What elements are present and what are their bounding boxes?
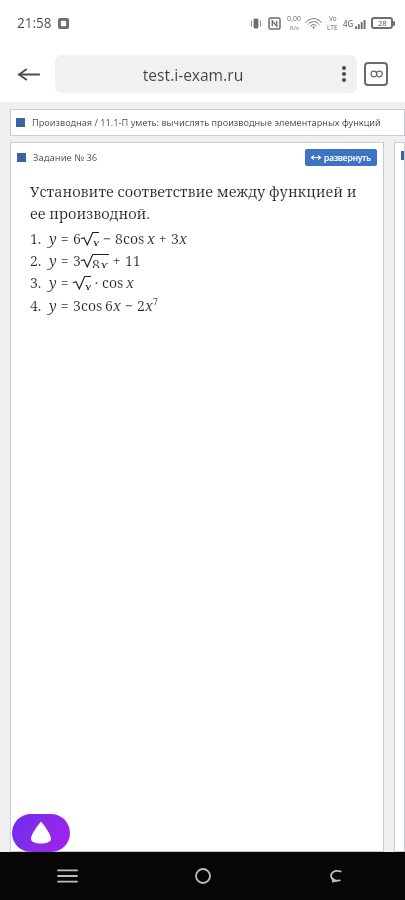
button[interactable]: Recent apps	[0, 852, 135, 900]
staticText: 1.	[30, 229, 42, 248]
staticText: 2	[137, 296, 145, 315]
button[interactable]: Tabs	[356, 54, 396, 94]
button[interactable]: Home	[135, 852, 270, 900]
staticText: 21:58	[17, 14, 52, 32]
staticText: =	[57, 296, 73, 315]
staticText: cos	[102, 273, 124, 292]
staticText: y	[49, 228, 57, 248]
staticText: развернуть	[324, 152, 371, 164]
staticText: =	[57, 251, 73, 270]
staticText: 2.	[30, 251, 42, 270]
staticText: =	[57, 229, 73, 248]
staticText: −	[121, 296, 137, 315]
staticText: x	[100, 255, 108, 268]
staticText: y	[49, 295, 57, 315]
staticText: 28	[378, 18, 387, 28]
staticText: 3	[171, 229, 179, 248]
staticText: 11	[125, 251, 141, 270]
staticText: 4G	[343, 18, 354, 29]
staticText: cos	[123, 229, 145, 248]
button[interactable]: test.i-exam.ru	[55, 55, 357, 93]
staticText: y	[49, 272, 57, 292]
button[interactable]	[394, 142, 405, 852]
staticText: 6	[105, 296, 113, 315]
staticText: x	[92, 233, 99, 246]
staticText: 8	[92, 255, 100, 268]
staticText: x	[126, 272, 134, 292]
staticText: 3.	[30, 273, 42, 292]
staticText: x	[147, 228, 155, 248]
staticText: x	[113, 295, 121, 315]
staticText: cos	[81, 296, 103, 315]
staticText: 3	[73, 251, 81, 270]
staticText: 8	[115, 229, 123, 248]
staticText: x	[145, 295, 153, 315]
staticText: x	[179, 228, 187, 248]
button[interactable]: Производная / 11.1-П уметь: вычислять пр…	[10, 109, 405, 136]
staticText: −	[99, 229, 115, 248]
button[interactable]: Alice assistant	[12, 814, 70, 852]
button[interactable]: развернуть	[305, 149, 377, 166]
staticText: 0,00	[287, 14, 301, 24]
staticText: Установите соответствие между функцией и…	[30, 181, 370, 223]
staticText: y	[49, 250, 57, 270]
staticText: x	[84, 277, 91, 290]
staticText: +	[155, 229, 171, 248]
staticText: 6	[73, 229, 81, 248]
button[interactable]: More options	[331, 55, 357, 93]
staticText: Производная / 11.1-П уметь: вычислять пр…	[32, 116, 381, 129]
staticText: 7	[153, 295, 159, 307]
button[interactable]: Back	[270, 852, 405, 900]
staticText: =	[57, 273, 73, 292]
staticText: LTE	[327, 23, 338, 32]
staticText: test.i-exam.ru	[55, 64, 331, 85]
staticText: Vo	[329, 14, 337, 23]
staticText: 4.	[30, 296, 42, 315]
staticText: Задание № 36	[33, 151, 98, 164]
button[interactable]: Back	[6, 52, 50, 96]
staticText: +	[109, 251, 125, 270]
staticText: 3	[73, 296, 81, 315]
staticText: K/s	[290, 24, 299, 32]
staticText: ·	[91, 273, 102, 292]
